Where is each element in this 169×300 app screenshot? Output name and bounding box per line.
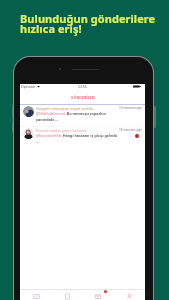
staticText: Bulunduğun gönderilere hızlıca eriş! — [20, 11, 156, 37]
button[interactable]: Messages — [20, 290, 52, 300]
staticText: Senginin minnojum inşarlı çevirile... — [36, 106, 96, 111]
staticText: @Tsfdsfsdfs̨Caorevik Bu mimroşu esparkın… — [36, 111, 118, 122]
staticText: 23:56 — [78, 84, 87, 89]
button[interactable]: Senginin minnojum inşarlı çevirile... — [20, 105, 145, 126]
staticText: GÖNDERİLEN — [71, 95, 95, 100]
button[interactable]: Profile — [114, 290, 145, 300]
button[interactable]: Inbox — [83, 290, 114, 300]
staticText: @Boşenıdenfefde Hangi hastane iş çıkışı … — [36, 133, 118, 144]
staticText: Operatör — [21, 84, 36, 89]
staticText: Pisema hesıbın gerer bulunmı — [36, 128, 87, 133]
staticText: 13 minutes ago — [119, 106, 143, 110]
button[interactable]: Discover — [52, 290, 83, 300]
staticText: 18 minutes ago — [119, 128, 143, 132]
button[interactable]: Pisema hesıbın gerer bulunmı — [20, 127, 145, 148]
